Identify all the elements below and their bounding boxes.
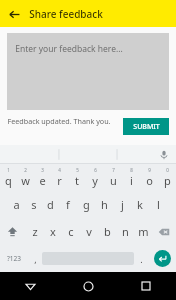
button[interactable]: k: [131, 191, 149, 218]
staticText: Enter your feedback here...: [15, 43, 123, 55]
button[interactable]: 7: [104, 164, 122, 191]
staticText: SUBMIT: [133, 122, 160, 132]
button[interactable]: m: [134, 218, 152, 245]
staticText: n: [122, 224, 129, 239]
button[interactable]: [42, 245, 134, 272]
staticText: e: [39, 173, 46, 188]
button[interactable]: 5: [68, 164, 86, 191]
staticText: q: [5, 173, 12, 188]
staticText: h: [101, 197, 108, 212]
button[interactable]: Backspace: [152, 218, 176, 245]
button[interactable]: 6: [86, 164, 104, 191]
staticText: g: [83, 197, 90, 212]
button[interactable]: 2: [17, 164, 34, 191]
button[interactable]: h: [95, 191, 113, 218]
button[interactable]: Shift: [0, 218, 25, 245]
button[interactable]: a: [8, 191, 25, 218]
staticText: a: [13, 197, 20, 212]
staticText: l: [157, 197, 160, 212]
button[interactable]: v: [80, 218, 98, 245]
button[interactable]: Back: [5, 5, 23, 23]
staticText: 9: [148, 167, 151, 173]
button[interactable]: ?123: [0, 245, 28, 272]
staticText: 3: [41, 167, 44, 173]
button[interactable]: d: [42, 191, 59, 218]
button[interactable]: Enter your feedback here...: [7, 33, 169, 110]
staticText: s: [31, 197, 37, 212]
button[interactable]: x: [44, 218, 62, 245]
staticText: 6: [94, 167, 97, 173]
button[interactable]: g: [77, 191, 95, 218]
button[interactable]: 9: [140, 164, 158, 191]
staticText: d: [47, 197, 54, 212]
button[interactable]: n: [116, 218, 134, 245]
button[interactable]: l: [149, 191, 167, 218]
staticText: 2: [24, 167, 27, 173]
staticText: 8: [130, 167, 133, 173]
staticText: t: [75, 173, 79, 188]
staticText: y: [92, 173, 98, 188]
staticText: 4: [58, 167, 61, 173]
staticText: x: [50, 224, 56, 239]
staticText: .: [140, 253, 143, 265]
staticText: Share feedback: [29, 7, 103, 21]
staticText: i: [130, 173, 133, 188]
staticText: z: [32, 224, 38, 239]
button[interactable]: b: [98, 218, 116, 245]
staticText: r: [57, 173, 62, 188]
staticText: 7: [112, 167, 115, 173]
button[interactable]: c: [62, 218, 80, 245]
button[interactable]: 3: [34, 164, 51, 191]
staticText: j: [121, 197, 124, 212]
staticText: v: [86, 224, 92, 239]
button[interactable]: f: [59, 191, 77, 218]
button[interactable]: z: [25, 218, 44, 245]
button[interactable]: 4: [51, 164, 68, 191]
button[interactable]: s: [25, 191, 42, 218]
button[interactable]: Home: [80, 278, 96, 294]
staticText: c: [68, 224, 74, 239]
button[interactable]: 1: [0, 164, 17, 191]
button[interactable]: Enter: [148, 245, 176, 272]
staticText: w: [21, 173, 30, 188]
staticText: 5: [76, 167, 79, 173]
staticText: p: [164, 173, 171, 188]
staticText: u: [110, 173, 117, 188]
button[interactable]: Voice input: [157, 148, 171, 162]
staticText: Feedback updated. Thank you.: [7, 116, 111, 126]
button[interactable]: 0: [158, 164, 176, 191]
staticText: 0: [166, 167, 169, 173]
staticText: f: [66, 197, 70, 212]
staticText: ?123: [7, 254, 21, 263]
staticText: m: [138, 224, 149, 239]
button[interactable]: ,: [28, 245, 42, 272]
staticText: 1: [7, 167, 10, 173]
button[interactable]: j: [113, 191, 131, 218]
staticText: o: [146, 173, 153, 188]
button[interactable]: Recent apps: [138, 278, 154, 294]
button[interactable]: 8: [122, 164, 140, 191]
staticText: ,: [34, 253, 37, 265]
button[interactable]: Back: [22, 278, 38, 294]
staticText: k: [137, 197, 143, 212]
staticText: b: [104, 224, 111, 239]
button[interactable]: .: [134, 245, 148, 272]
button[interactable]: SUBMIT: [123, 118, 169, 135]
